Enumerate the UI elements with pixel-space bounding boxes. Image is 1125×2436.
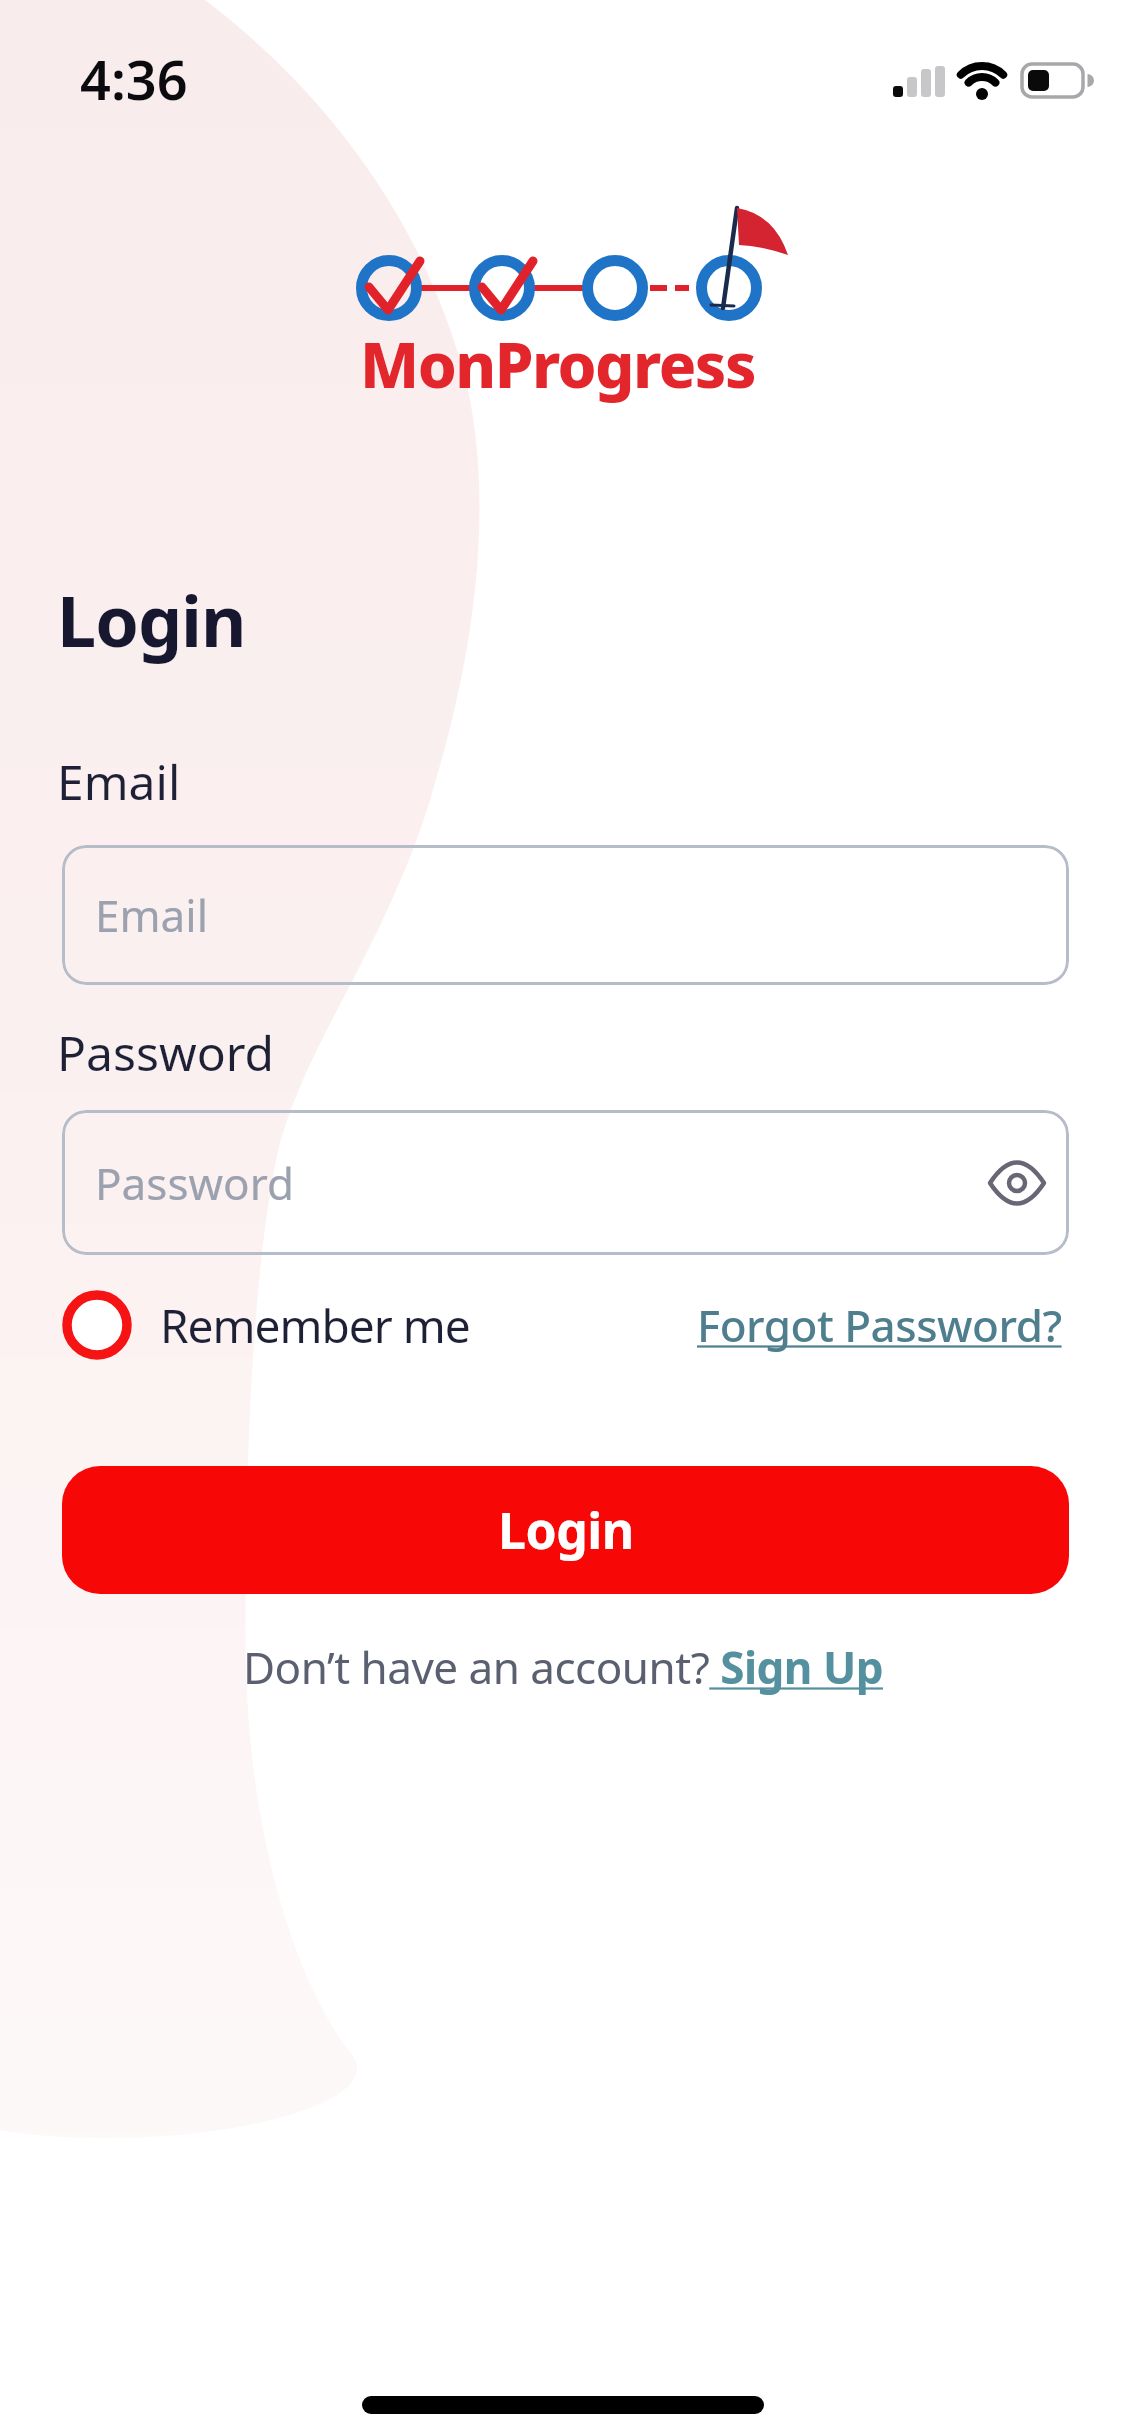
button[interactable]: Remember me bbox=[62, 1288, 470, 1362]
staticText: Email bbox=[57, 749, 181, 814]
staticText: Remember me bbox=[160, 1294, 470, 1357]
staticText: Login bbox=[498, 1496, 634, 1564]
staticText: Email bbox=[95, 885, 208, 945]
button[interactable]: Don’t have an account? Sign Up bbox=[0, 1637, 1125, 1697]
button[interactable]: Email bbox=[62, 845, 1069, 985]
staticText: MonProgress bbox=[0, 322, 1120, 406]
staticText: Don’t have an account? Sign Up bbox=[243, 1637, 883, 1697]
button[interactable]: Login bbox=[62, 1466, 1069, 1594]
staticText: Password bbox=[57, 1020, 275, 1085]
button[interactable]: Forgot Password? bbox=[697, 1295, 1062, 1355]
button[interactable]: Password bbox=[62, 1110, 1069, 1255]
staticText: Login bbox=[57, 572, 246, 667]
button[interactable] bbox=[987, 1153, 1047, 1213]
staticText: 4:36 bbox=[80, 42, 188, 116]
staticText: Password bbox=[95, 1153, 295, 1213]
